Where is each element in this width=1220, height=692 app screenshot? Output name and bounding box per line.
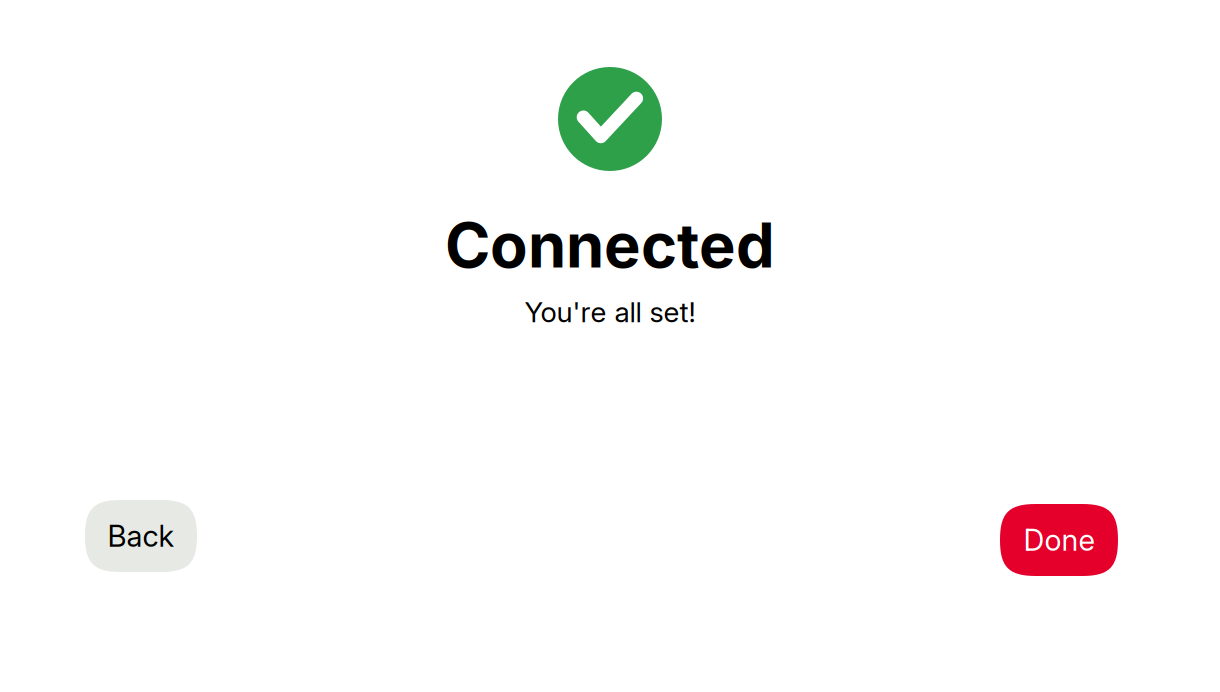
button[interactable]: Back xyxy=(85,500,197,572)
staticText: Connected xyxy=(445,208,775,282)
staticText: You're all set! xyxy=(524,295,695,329)
staticText: Back xyxy=(107,518,174,554)
button[interactable]: Done xyxy=(1000,504,1118,576)
staticText: Done xyxy=(1023,522,1094,558)
